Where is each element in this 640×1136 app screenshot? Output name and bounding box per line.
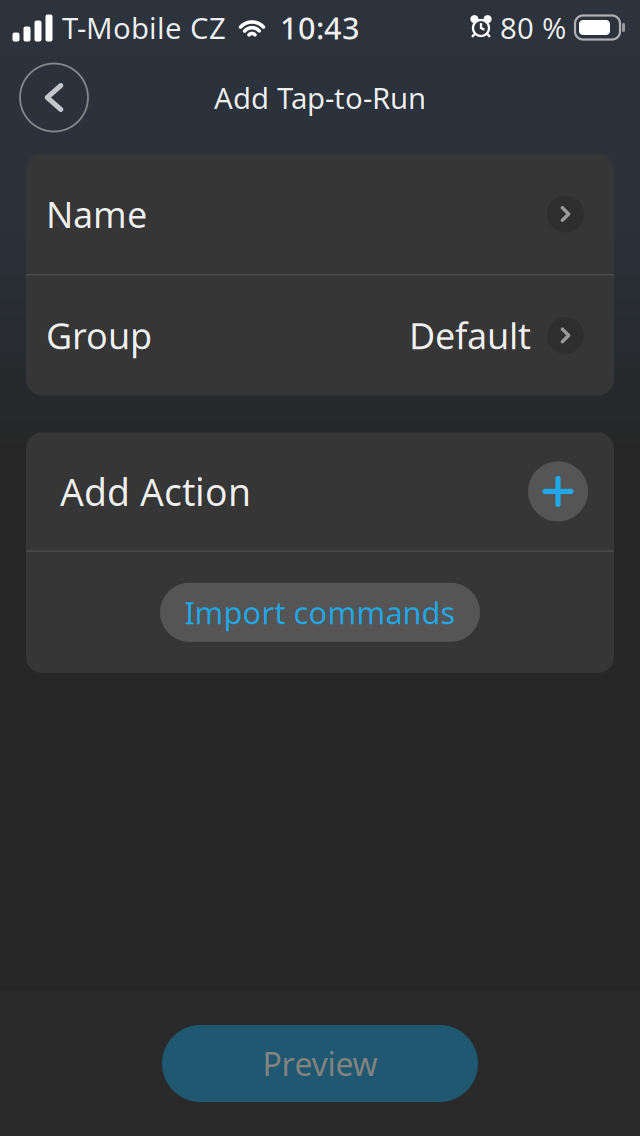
button[interactable]: Back bbox=[12, 55, 96, 139]
button[interactable]: Add Action bbox=[26, 432, 614, 550]
staticText: T-Mobile CZ bbox=[62, 8, 226, 47]
button[interactable]: Group bbox=[26, 275, 614, 395]
staticText: 80 % bbox=[500, 8, 566, 47]
button[interactable]: Import commands bbox=[160, 583, 480, 642]
staticText: Add Tap-to-Run bbox=[214, 78, 426, 117]
button[interactable]: Preview bbox=[162, 1025, 478, 1102]
staticText: Name bbox=[46, 190, 147, 238]
button[interactable]: Name bbox=[26, 154, 614, 274]
staticText: Preview bbox=[262, 1042, 377, 1085]
staticText: Default bbox=[409, 311, 531, 359]
staticText: Add Action bbox=[60, 467, 251, 516]
staticText: 10:43 bbox=[280, 7, 360, 48]
staticText: Group bbox=[46, 311, 152, 359]
staticText: Import commands bbox=[184, 592, 455, 633]
